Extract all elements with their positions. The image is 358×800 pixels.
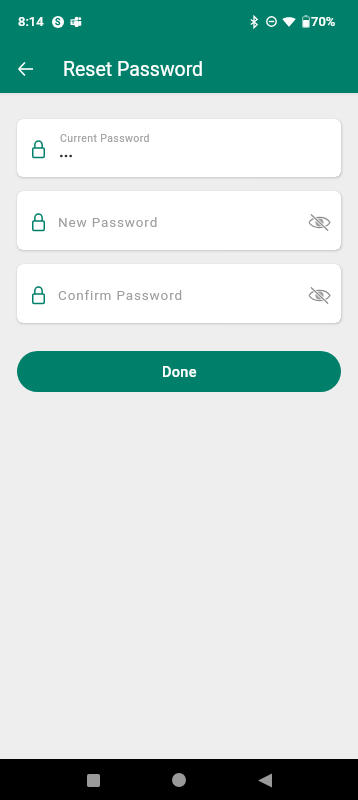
button[interactable]: Show password: [306, 282, 332, 308]
button[interactable]: Recent apps: [73, 760, 113, 800]
staticText: New Password: [58, 214, 306, 230]
staticText: 70%: [311, 14, 336, 29]
staticText: Current Password: [60, 132, 150, 144]
button[interactable]: Home: [159, 760, 199, 800]
button[interactable]: Done: [17, 351, 341, 392]
staticText: Confirm Password: [58, 287, 306, 303]
staticText: Done: [162, 364, 197, 381]
staticText: S: [55, 17, 61, 28]
button[interactable]: Current Password: [17, 119, 341, 177]
button[interactable]: Show password: [306, 209, 332, 235]
button[interactable]: New Password: [17, 191, 341, 250]
button[interactable]: Confirm Password: [17, 264, 341, 323]
button[interactable]: Back: [245, 760, 285, 800]
staticText: 8:14: [18, 14, 44, 29]
button[interactable]: Back: [9, 53, 41, 85]
staticText: Reset Password: [63, 58, 204, 81]
